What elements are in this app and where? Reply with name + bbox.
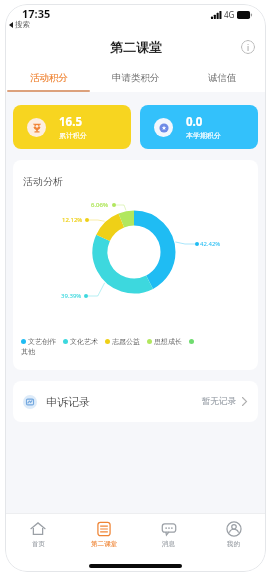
button[interactable]: 申请类积分 [92,62,179,92]
staticText: 4G [224,9,235,20]
staticText: 诚信值 [208,72,237,84]
staticText: 首页 [32,540,45,548]
button[interactable]: 消息 [136,514,201,549]
staticText: 12.12% [62,216,83,224]
button[interactable]: 活动积分 [5,62,92,92]
staticText: 活动积分 [30,72,68,84]
staticText: 消息 [162,540,175,548]
button[interactable]: 我的 [201,514,266,549]
staticText: 思想成长 [154,337,182,346]
staticText: 39.39% [61,292,82,300]
button[interactable]: 0.0 [140,105,258,149]
button[interactable]: 诚信值 [179,62,266,92]
button[interactable]: 16.5 [13,105,131,149]
staticText: 42.42% [200,240,221,248]
staticText: 第二课堂 [91,540,117,548]
staticText: 累计积分 [59,131,87,140]
button[interactable]: 申诉记录 [13,381,258,422]
staticText: 本学期积分 [186,131,221,140]
button[interactable]: 第二课堂 [71,514,136,549]
staticText: 17:35 [22,6,51,21]
staticText: 志愿公益 [112,337,140,346]
staticText: 16.5 [59,114,82,130]
staticText: 暂无记录 [202,396,236,407]
staticText: 我的 [227,540,240,548]
staticText: 其他 [21,347,35,356]
staticText: 第二课堂 [110,39,162,55]
staticText: 活动分析 [23,175,63,188]
staticText: 文化艺术 [70,337,98,346]
staticText: 0.0 [186,114,203,130]
button[interactable]: Info [241,40,255,54]
staticText: 申诉记录 [46,395,90,409]
staticText: 搜索 [15,20,30,29]
staticText: 申请类积分 [112,72,160,84]
staticText: 文艺创作 [28,337,56,346]
staticText: 6.06% [91,201,108,209]
button[interactable]: 首页 [5,514,71,549]
staticText: i [247,42,250,53]
